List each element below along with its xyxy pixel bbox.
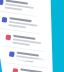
staticText: Commandez vos produits de parapharmacie xyxy=(1,58,63,66)
